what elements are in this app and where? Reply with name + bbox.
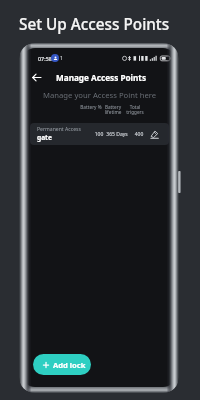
staticText: Total triggers — [121, 104, 149, 116]
staticText: 400 — [125, 131, 153, 138]
staticText: 07:58 — [38, 55, 52, 62]
staticText: Battery lifetime — [99, 104, 127, 116]
button[interactable]: Edit — [147, 127, 161, 141]
button[interactable]: Back — [29, 70, 43, 84]
staticText: Battery % — [77, 104, 105, 110]
staticText: Permanent Access — [37, 126, 81, 133]
button[interactable]: Add lock — [33, 354, 91, 375]
staticText: 100 — [85, 131, 113, 138]
button[interactable]: Permanent Access — [30, 123, 169, 145]
staticText: 1 — [60, 55, 63, 62]
staticText: gate — [37, 133, 52, 142]
staticText: 365 Days — [103, 131, 131, 138]
staticText: Add lock — [53, 360, 86, 370]
staticText: Set Up Access Points — [19, 14, 170, 35]
staticText: Manage your Access Point here — [43, 90, 157, 100]
staticText: Manage Access Points — [56, 72, 147, 83]
